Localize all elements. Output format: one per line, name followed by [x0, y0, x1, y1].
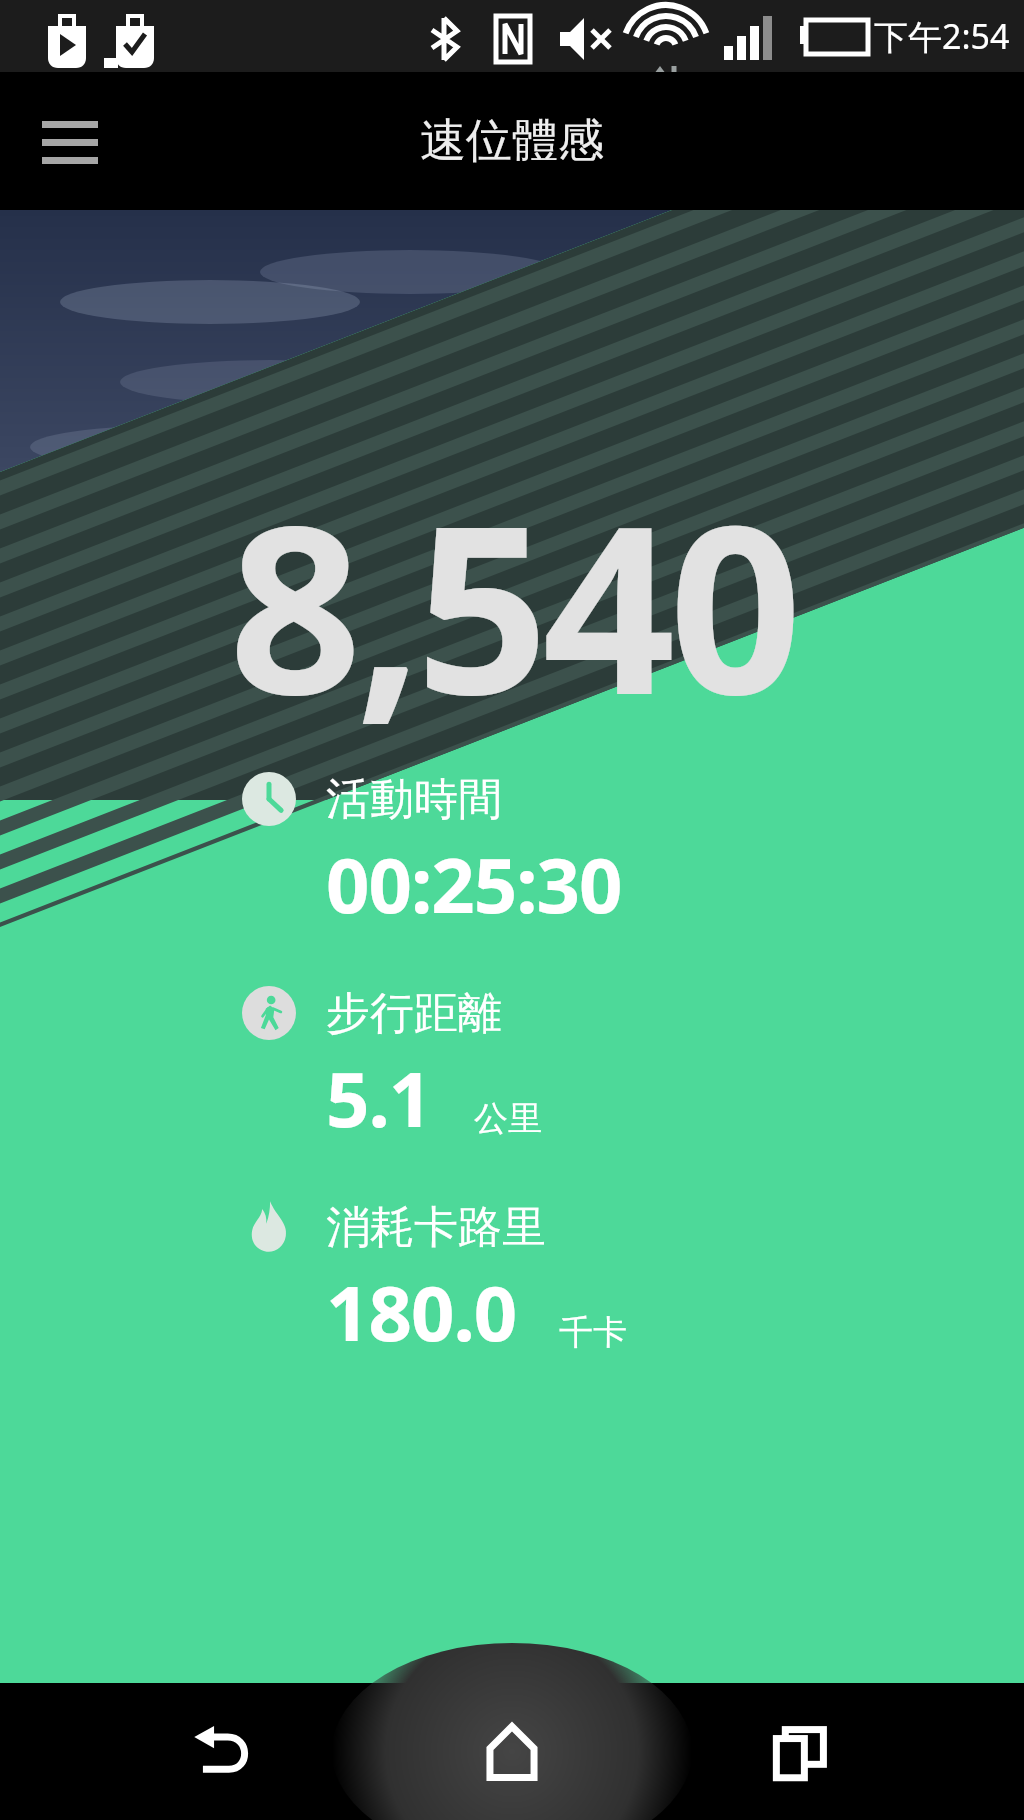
staticText: 消耗卡路里	[326, 1200, 546, 1255]
staticText: 活動時間	[326, 772, 502, 827]
staticText: 步行距離	[326, 986, 502, 1041]
staticText: 下午2:54	[874, 13, 1010, 59]
staticText: 180.0	[326, 1260, 517, 1364]
staticText: 公里	[474, 1097, 542, 1140]
staticText: 8,540	[229, 446, 796, 762]
button[interactable]: Menu	[22, 93, 118, 189]
staticText: 5.1	[326, 1046, 432, 1150]
button[interactable]: Recent apps	[736, 1687, 866, 1817]
button[interactable]: 消耗卡路里	[240, 1198, 627, 1364]
button[interactable]: Back	[159, 1687, 289, 1817]
staticText: 千卡	[559, 1311, 627, 1354]
button[interactable]: 活動時間	[240, 770, 622, 936]
button[interactable]: Home	[447, 1687, 577, 1817]
staticText: 速位體感	[420, 112, 604, 170]
button[interactable]: 步行距離	[240, 984, 542, 1150]
staticText: 00:25:30	[326, 832, 622, 936]
